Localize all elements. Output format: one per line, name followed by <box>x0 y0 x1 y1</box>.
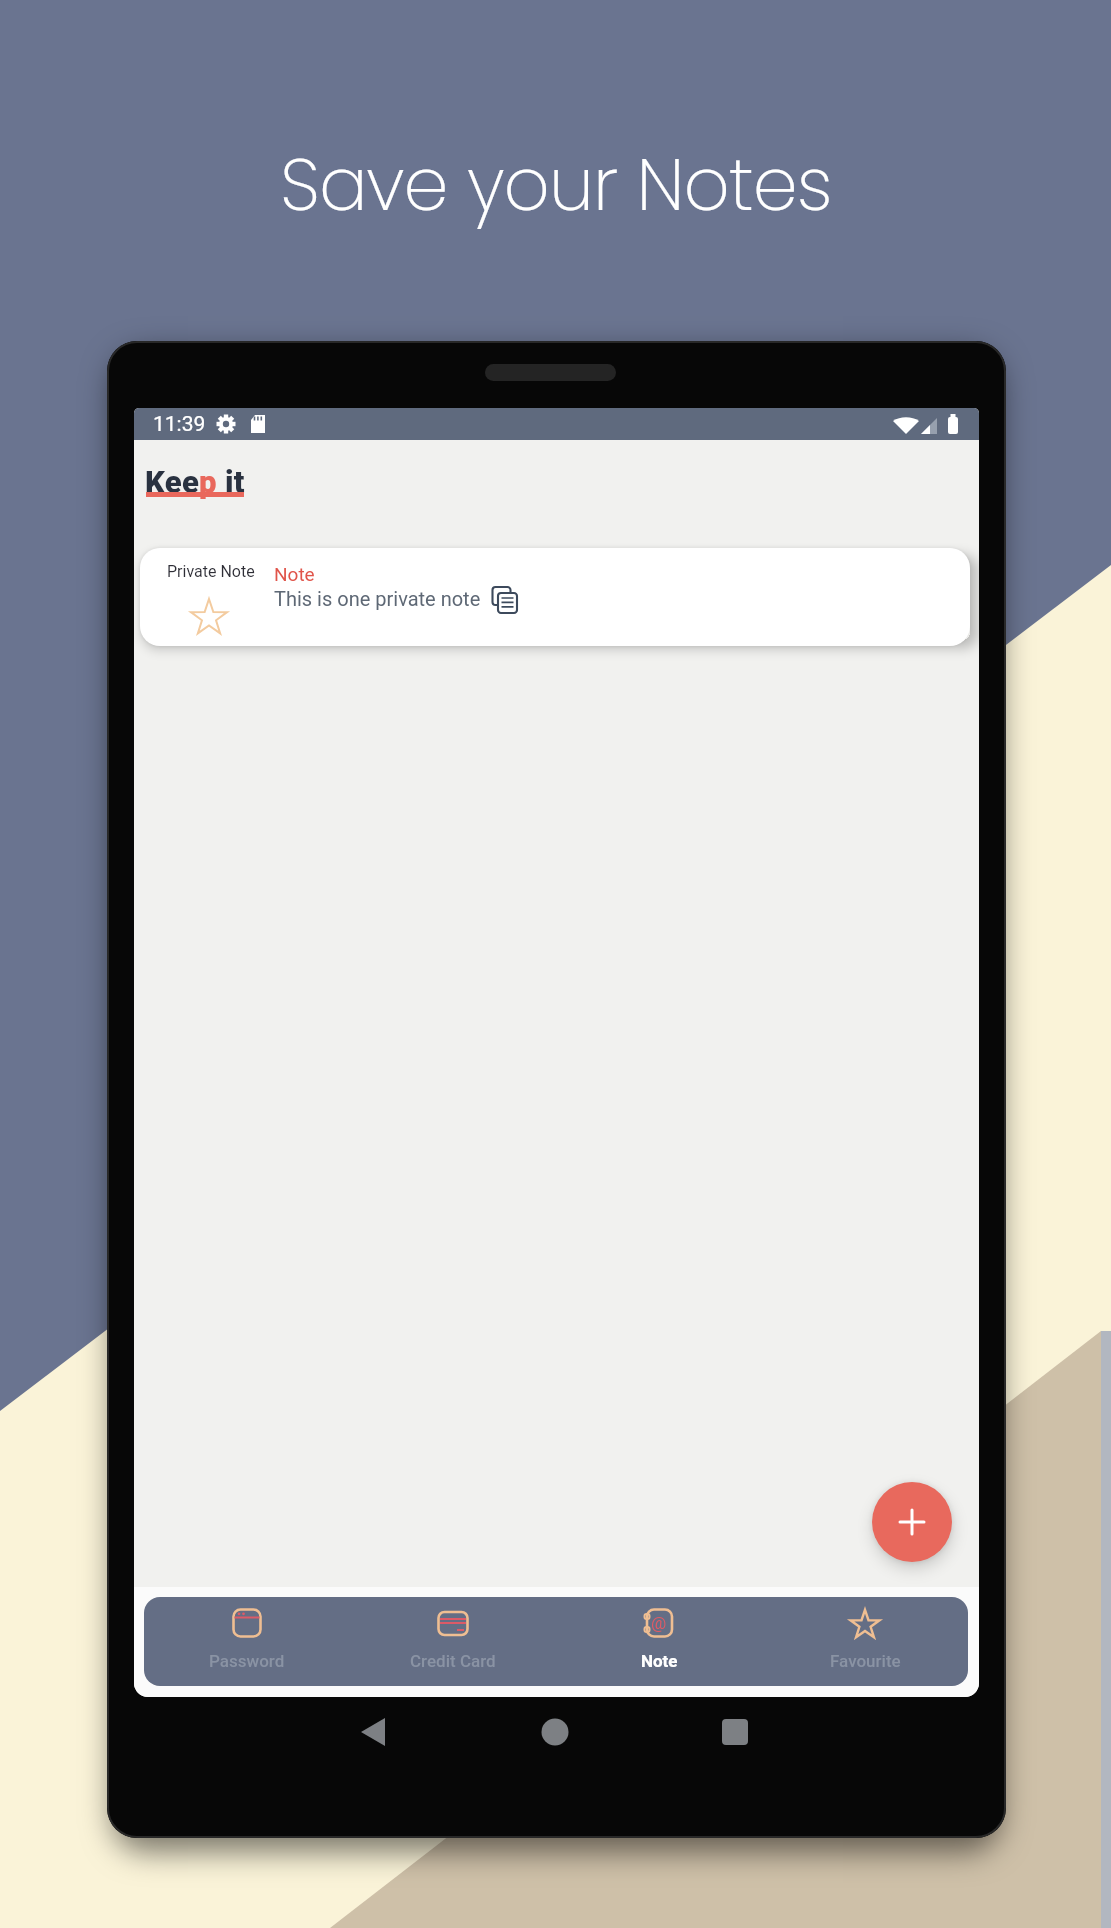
button[interactable]: Private Note <box>140 548 970 646</box>
staticText: Credit Card <box>410 1651 496 1671</box>
button[interactable]: Credit Card <box>350 1597 556 1686</box>
staticText: Note <box>641 1651 678 1671</box>
staticText: Save your Notes <box>280 134 832 235</box>
button[interactable]: Password <box>144 1597 350 1686</box>
staticText: Private Note <box>167 562 255 581</box>
staticText: Note <box>274 563 315 585</box>
staticText: Favourite <box>830 1651 901 1671</box>
staticText: Password <box>209 1651 285 1671</box>
staticText: @ <box>651 1613 667 1633</box>
staticText: This is one private note <box>274 587 481 610</box>
button[interactable] <box>872 1482 952 1562</box>
button[interactable]: @ <box>556 1597 762 1686</box>
button[interactable]: Favourite <box>762 1597 968 1686</box>
staticText: 11:39 <box>153 412 206 437</box>
staticText: Keep it <box>145 464 245 500</box>
